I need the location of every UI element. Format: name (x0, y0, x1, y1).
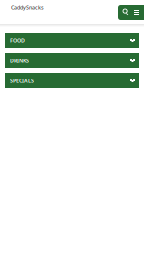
button[interactable]: DRINKS (5, 53, 139, 68)
button[interactable]: Search and menu (118, 5, 144, 20)
staticText: DRINKS (10, 57, 29, 64)
staticText: CaddySnacks (11, 4, 44, 11)
staticText: FOOD (10, 37, 25, 44)
button[interactable]: SPECIALS (5, 73, 139, 88)
button[interactable]: FOOD (5, 33, 139, 48)
staticText: SPECIALS (10, 77, 34, 84)
